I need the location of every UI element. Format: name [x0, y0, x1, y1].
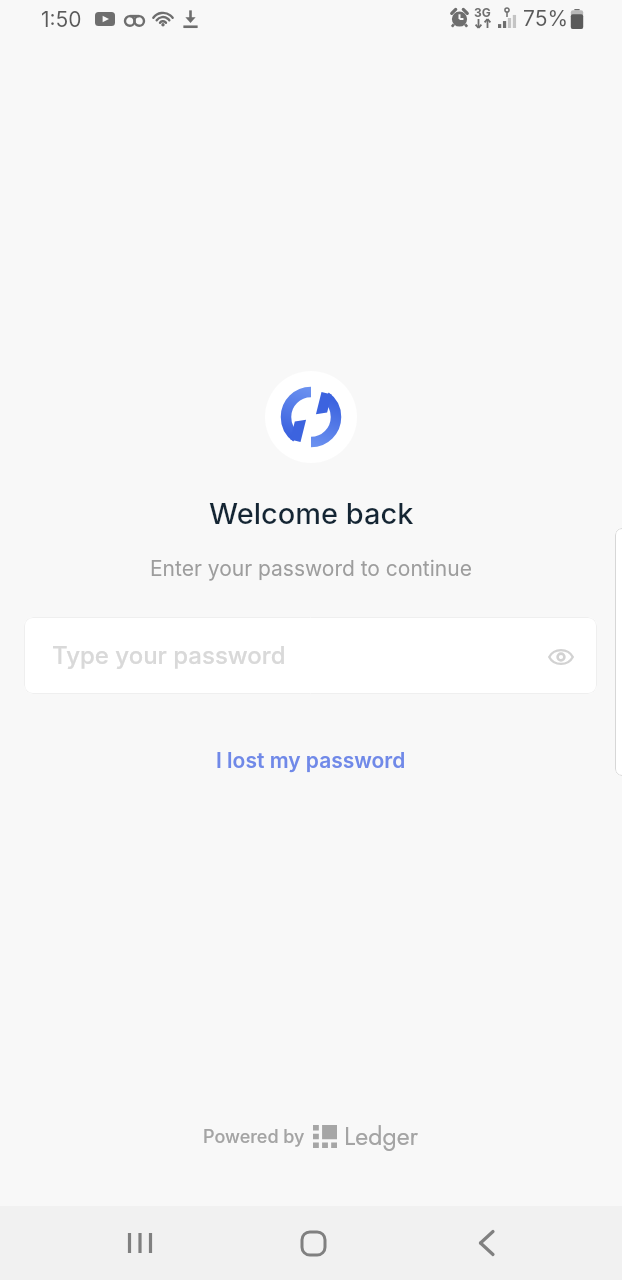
staticText: I lost my password — [216, 748, 406, 773]
staticText: 75% — [523, 6, 569, 31]
staticText: Enter your password to continue — [150, 556, 472, 581]
staticText: Welcome back — [209, 496, 414, 531]
staticText: Powered by — [203, 1126, 305, 1148]
staticText: 1:50 — [41, 7, 82, 32]
staticText: Ledger — [344, 1118, 419, 1154]
button[interactable]: Show password — [537, 632, 585, 680]
button[interactable]: Type your password — [24, 617, 597, 694]
staticText: Type your password — [52, 641, 286, 670]
button[interactable]: Back — [452, 1206, 522, 1280]
staticText: 3G — [474, 5, 491, 20]
button[interactable]: Recent apps — [105, 1206, 175, 1280]
button[interactable]: Home — [278, 1206, 348, 1280]
button[interactable]: I lost my password — [204, 738, 418, 783]
